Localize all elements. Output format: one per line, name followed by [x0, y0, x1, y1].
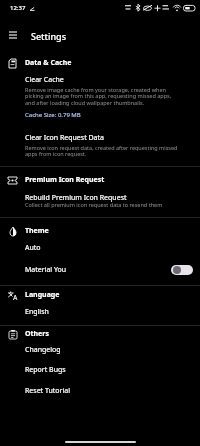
- staticText: Clear Icon Request Data: [25, 133, 105, 143]
- button[interactable]: Changelog: [0, 340, 200, 359]
- staticText: 12:37: [10, 4, 26, 12]
- staticText: Clear Cache: [25, 75, 64, 85]
- staticText: Premium Icon Request: [25, 175, 105, 185]
- staticText: Theme: [25, 226, 49, 236]
- button[interactable]: Clear Cache: [0, 75, 200, 119]
- staticText: Others: [25, 329, 49, 339]
- button[interactable]: Menu: [4, 26, 22, 44]
- staticText: Reset Tutorial: [25, 386, 71, 396]
- staticText: Changelog: [25, 345, 61, 355]
- button[interactable]: Reset Tutorial: [0, 380, 200, 401]
- button[interactable]: Auto: [0, 237, 200, 259]
- button[interactable]: Clear Icon Request Data: [0, 133, 200, 158]
- staticText: Remove image cache from your storage, cr…: [25, 86, 180, 107]
- staticText: Cache Size: 0.79 MB: [25, 111, 81, 119]
- staticText: Auto: [25, 243, 41, 253]
- button[interactable]: Report Bugs: [0, 359, 200, 380]
- staticText: Data & Cache: [25, 58, 72, 68]
- staticText: Material You: [25, 265, 67, 275]
- staticText: Language: [25, 290, 60, 300]
- staticText: Settings: [31, 30, 67, 42]
- staticText: Collect all premium icon request data to…: [25, 201, 163, 208]
- button[interactable]: Rebuild Premium Icon Request: [0, 193, 200, 210]
- staticText: Rebuild Premium Icon Request: [25, 193, 127, 203]
- button[interactable]: English: [0, 301, 200, 322]
- button[interactable]: Material You: [0, 259, 200, 281]
- staticText: Report Bugs: [25, 365, 66, 375]
- staticText: English: [25, 307, 49, 317]
- staticText: Remove icon request data, created after …: [25, 144, 180, 158]
